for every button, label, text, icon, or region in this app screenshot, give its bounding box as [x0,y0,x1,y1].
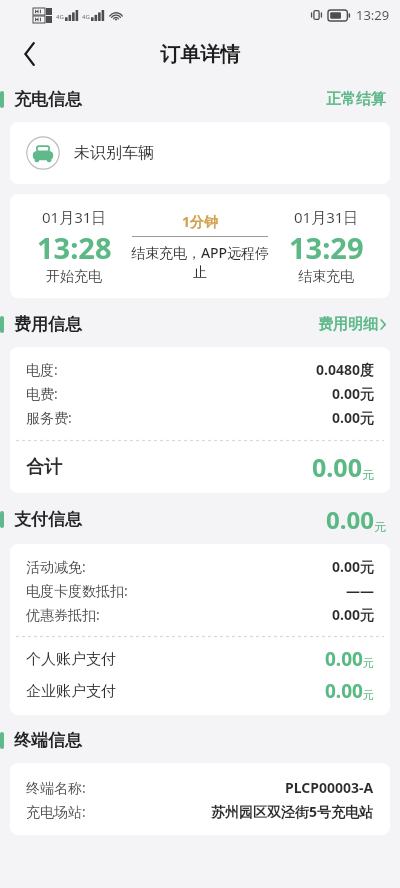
staticText: 活动减免: [26,557,86,576]
staticText: 0.00 [312,450,362,484]
staticText: 终端名称: [26,778,86,797]
staticText: 电度卡度数抵扣: [26,581,128,600]
staticText: 开始充电 [46,268,102,286]
staticText: 个人账户支付 [26,650,116,669]
staticText: 13:29 [356,6,390,24]
staticText: 元 [374,519,386,534]
staticText: 元 [363,656,374,670]
staticText: 0.00元 [332,384,374,403]
staticText: 企业账户支付 [26,682,116,701]
staticText: 支付信息 [14,509,82,530]
staticText: 终端信息 [14,730,82,751]
staticText: 13:28 [37,228,112,267]
staticText: 充电场站: [26,802,86,821]
staticText: 13:29 [289,228,364,267]
staticText: 服务费: [26,408,72,427]
staticText: 电度: [26,360,58,379]
staticText: 01月31日 [42,207,107,227]
staticText: 0.00元 [332,605,374,624]
staticText: 0.00 [325,646,363,672]
staticText: 4G [82,13,90,21]
button[interactable]: Back [8,32,52,76]
staticText: —— [346,581,374,600]
staticText: 合计 [26,456,62,479]
staticText: 4G [56,13,64,21]
staticText: 0.00元 [332,408,374,427]
staticText: 结束充电，APP远程停止 [130,243,270,281]
staticText: 结束充电 [298,268,354,286]
staticText: 0.00 [326,503,374,536]
staticText: 费用明细 [318,315,378,334]
staticText: 01月31日 [294,207,359,227]
staticText: 元 [363,688,374,702]
staticText: 充电信息 [14,89,82,110]
staticText: 0.0480度 [316,360,374,379]
staticText: 费用信息 [14,314,82,335]
staticText: 电费: [26,384,58,403]
staticText: 0.00元 [332,557,374,576]
button[interactable]: 费用明细 [318,315,386,334]
staticText: 苏州园区双泾街5号充电站 [211,802,374,821]
staticText: 正常结算 [326,90,386,109]
staticText: PLCP00003-A [285,778,374,797]
staticText: 未识别车辆 [74,143,154,163]
staticText: 0.00 [325,678,363,704]
staticText: 1分钟 [182,212,219,231]
button[interactable]: 未识别车辆 [10,122,390,184]
staticText: 订单详情 [160,42,240,67]
staticText: 优惠券抵扣: [26,605,100,624]
staticText: 元 [362,467,374,482]
